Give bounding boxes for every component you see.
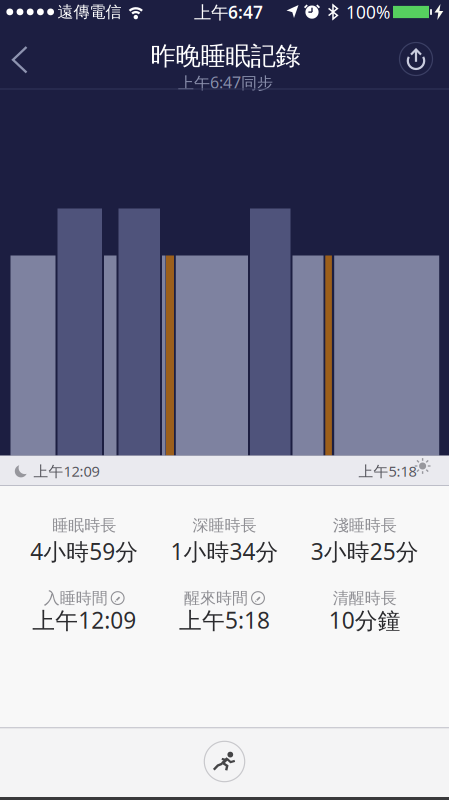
button[interactable]: Edit 入睡時間 [111,591,125,605]
staticText: 1小時34分 [170,536,278,566]
staticText: 上午6:47同步 [178,72,273,93]
staticText: 醒來時間 [184,588,248,608]
staticText: 入睡時間 [44,588,108,608]
staticText: 上午12:09 [32,605,136,635]
staticText: 上午12:09 [33,461,99,481]
staticText: 4小時59分 [30,536,138,566]
staticText: 遠傳電信 [57,2,121,22]
button[interactable]: Activity [203,740,245,782]
staticText: 清醒時長 [333,588,397,608]
staticText: 3小時25分 [311,536,419,566]
button[interactable]: Back [0,35,44,83]
staticText: 睡眠時長 [52,515,116,535]
staticText: 100% [346,0,390,23]
staticText: 上午5:18 [358,461,416,481]
staticText: 淺睡時長 [333,515,397,535]
staticText: 深睡時長 [192,515,256,535]
staticText: 昨晚睡眠記錄 [150,40,300,71]
staticText: 上午5:18 [179,605,270,635]
button[interactable]: Share [398,41,433,76]
button[interactable]: Edit 醒來時間 [251,591,265,605]
staticText: 上午6:47 [194,0,263,23]
staticText: 10分鐘 [329,605,401,635]
